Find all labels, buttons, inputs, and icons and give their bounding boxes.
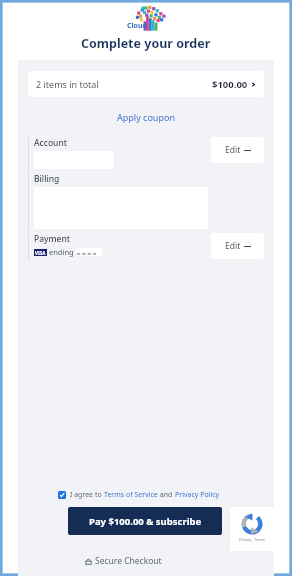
staticText: 2 items in total [36,78,99,90]
button[interactable]: Terms of Service [104,490,158,500]
staticText: I agree to [70,490,104,500]
staticText: Account [34,137,68,149]
staticText: $100.00 [212,78,248,91]
button[interactable]: Privacy Policy [175,490,220,500]
staticText: and [158,490,175,500]
staticText: Pay $100.00 & subscribe [89,515,202,528]
staticText: Billing [34,173,60,185]
button[interactable]: Edit account [211,137,264,163]
staticText: Terms of Service [104,490,158,500]
staticText: Edit [225,240,241,252]
staticText: Complete your order [81,35,211,52]
staticText: Payment [34,233,71,245]
button[interactable]: Edit payment [211,233,264,259]
staticText: Cloud [127,21,147,31]
button[interactable]: reCAPTCHA [230,507,274,551]
button[interactable]: Pay $100.00 & subscribe [68,507,222,535]
button[interactable]: Apply coupon [113,110,179,124]
staticText: Privacy - Terms [239,537,265,542]
staticText: Edit [225,144,241,156]
button[interactable]: 2 items in total [28,71,264,97]
staticText: Secure Checkout [95,555,162,567]
staticText: VISA [35,250,46,256]
button[interactable]: I agree to [58,490,220,500]
staticText: Privacy Policy [175,490,220,500]
staticText: Apply coupon [117,111,175,123]
staticText: ending [49,247,74,257]
